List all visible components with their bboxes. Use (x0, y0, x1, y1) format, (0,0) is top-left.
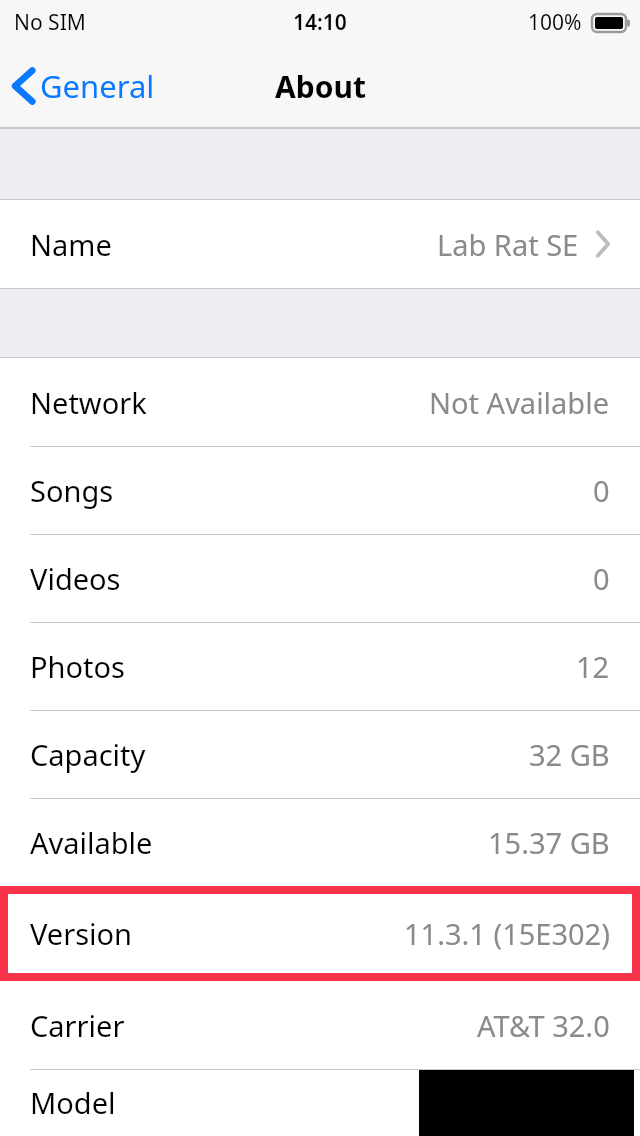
staticText: 11.3.1 (15E302) (404, 914, 610, 953)
staticText: 100% (528, 8, 582, 37)
staticText: About (275, 66, 366, 107)
button[interactable]: Songs (0, 446, 640, 534)
button[interactable]: Available (0, 798, 640, 886)
staticText: 15.37 GB (488, 823, 610, 862)
staticText: No SIM (14, 8, 86, 37)
staticText: AT&T 32.0 (477, 1006, 610, 1045)
staticText: Lab Rat SE (437, 225, 579, 264)
staticText: Capacity (30, 735, 146, 774)
staticText: Version (30, 914, 132, 953)
button[interactable]: Photos (0, 622, 640, 710)
button[interactable]: Videos (0, 534, 640, 622)
staticText: Photos (30, 647, 125, 686)
staticText: 0 (593, 559, 610, 598)
button[interactable]: Name (0, 200, 640, 288)
button[interactable]: Back to General (0, 55, 169, 117)
button[interactable]: Network (0, 358, 640, 446)
staticText: Model (30, 1083, 116, 1122)
staticText: Videos (30, 559, 121, 598)
button[interactable]: Capacity (0, 710, 640, 798)
staticText: 14:10 (293, 8, 347, 37)
staticText: 12 (576, 647, 610, 686)
staticText: Songs (30, 471, 114, 510)
staticText: General (40, 65, 155, 107)
button[interactable]: Model (0, 1069, 640, 1136)
staticText: Not Available (429, 383, 610, 422)
button[interactable]: Version (0, 886, 640, 981)
staticText: 0 (593, 471, 610, 510)
staticText: Carrier (30, 1006, 125, 1045)
staticText: 32 GB (529, 735, 610, 774)
staticText: Network (30, 383, 147, 422)
staticText: Available (30, 823, 153, 862)
staticText: Name (30, 225, 112, 264)
button[interactable]: Carrier (0, 981, 640, 1069)
other: Back to General (13, 68, 34, 104)
